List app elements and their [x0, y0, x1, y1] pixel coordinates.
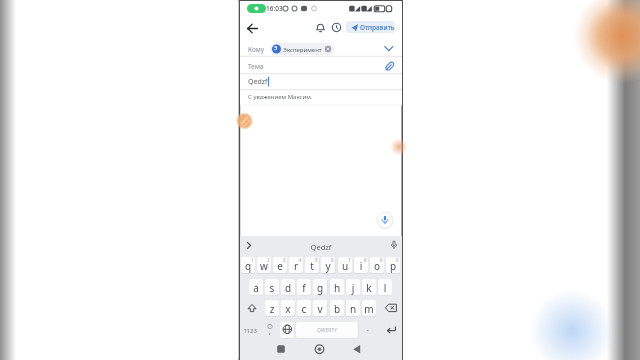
button[interactable]: d — [281, 279, 295, 295]
button[interactable] — [280, 322, 294, 338]
button[interactable]: s — [265, 279, 279, 295]
staticText: 8 — [364, 257, 367, 263]
staticText: q — [241, 259, 255, 273]
button[interactable]: ?123 — [240, 322, 265, 338]
button[interactable]: Кому — [240, 41, 402, 56]
button[interactable]: e — [273, 257, 287, 273]
staticText: 5 — [315, 257, 318, 263]
staticText: j — [346, 281, 360, 295]
staticText: k — [362, 281, 376, 295]
button[interactable]: t — [305, 257, 319, 273]
button[interactable]: k — [362, 279, 376, 295]
button[interactable]: С уважением Максим. — [240, 90, 402, 105]
staticText: f — [297, 281, 311, 295]
button[interactable]: v — [313, 300, 327, 316]
staticText: Кому — [248, 45, 265, 54]
staticText: 4 — [299, 257, 302, 263]
button[interactable]: m — [362, 300, 376, 316]
button[interactable]: u — [338, 257, 352, 273]
button[interactable] — [352, 344, 362, 354]
staticText: Тема — [248, 62, 264, 71]
staticText: r — [289, 259, 303, 273]
button[interactable]: y — [321, 257, 335, 273]
staticText: b — [330, 302, 344, 316]
button[interactable] — [276, 344, 286, 354]
button[interactable]: o — [370, 257, 384, 273]
staticText: l — [378, 281, 392, 295]
staticText: o — [370, 259, 384, 273]
button[interactable]: l — [378, 279, 392, 295]
button[interactable]: q — [241, 257, 255, 273]
staticText: 1 — [251, 257, 254, 263]
staticText: v — [313, 302, 327, 316]
staticText: z — [265, 302, 279, 316]
button[interactable]: . — [360, 322, 376, 338]
staticText: w — [257, 259, 271, 273]
staticText: i — [354, 259, 368, 273]
staticText: Э — [274, 45, 278, 52]
staticText: Эксперимент — [283, 46, 322, 54]
staticText: n — [346, 302, 360, 316]
button[interactable] — [246, 22, 259, 35]
button[interactable]: QWERTY — [296, 322, 358, 338]
button[interactable] — [377, 212, 393, 228]
button[interactable]: c — [297, 300, 311, 316]
staticText: u — [338, 259, 352, 273]
button[interactable]: w — [257, 257, 271, 273]
staticText: t — [305, 259, 319, 273]
staticText: Qedzf — [248, 77, 268, 87]
staticText: 0 — [396, 257, 399, 263]
staticText: . — [367, 324, 369, 334]
button[interactable]: f — [297, 279, 311, 295]
staticText: s — [265, 281, 279, 295]
staticText: 3 — [283, 257, 286, 263]
button[interactable]: Отправить — [346, 21, 395, 33]
staticText: y — [321, 259, 335, 273]
staticText: g — [313, 281, 327, 295]
button[interactable] — [331, 22, 342, 33]
staticText: Отправить — [360, 23, 395, 32]
button[interactable]: Тема — [240, 57, 402, 73]
button[interactable]: i — [354, 257, 368, 273]
staticText: e — [273, 259, 287, 273]
staticText: 7 — [348, 257, 351, 263]
button[interactable]: x — [281, 300, 295, 316]
staticText: a — [249, 281, 263, 295]
button[interactable]: h — [330, 279, 344, 295]
button[interactable]: b — [330, 300, 344, 316]
staticText: 6 — [331, 257, 334, 263]
staticText: 9 — [380, 257, 383, 263]
staticText: d — [281, 281, 295, 295]
staticText: Qedzf — [240, 242, 402, 252]
staticText: ?123 — [244, 327, 257, 335]
staticText: 16:03 — [266, 4, 283, 13]
staticText: QWERTY — [296, 327, 358, 334]
button[interactable] — [383, 300, 399, 316]
button[interactable]: Qedzf — [240, 74, 402, 89]
staticText: c — [297, 302, 311, 316]
button[interactable]: n — [346, 300, 360, 316]
button[interactable] — [384, 322, 400, 338]
button[interactable]: a — [249, 279, 263, 295]
button[interactable]: p — [386, 257, 400, 273]
button[interactable]: g — [313, 279, 327, 295]
staticText: x — [281, 302, 295, 316]
button[interactable] — [244, 300, 260, 316]
button[interactable]: z — [265, 300, 279, 316]
staticText: h — [330, 281, 344, 295]
staticText: m — [362, 302, 376, 316]
button[interactable] — [314, 344, 325, 355]
button[interactable] — [315, 22, 326, 33]
staticText: p — [386, 259, 400, 273]
button[interactable]: r — [289, 257, 303, 273]
button[interactable]: j — [346, 279, 360, 295]
staticText: 2 — [267, 257, 270, 263]
staticText: , — [269, 327, 271, 337]
staticText: С уважением Максим. — [248, 93, 313, 101]
